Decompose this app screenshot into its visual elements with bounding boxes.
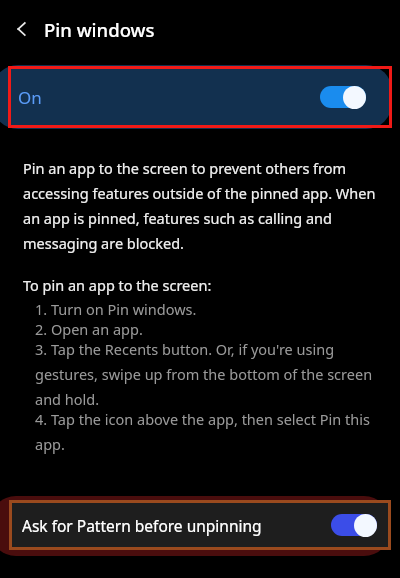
staticText: To pin an app to the screen: [23, 275, 212, 295]
staticText: On [18, 86, 42, 109]
staticText: Pin windows [44, 17, 155, 42]
staticText: 1. Turn on Pin windows. [35, 299, 197, 319]
button[interactable]: Toggle switch, on [320, 85, 366, 109]
staticText: Ask for Pattern before unpinning [22, 515, 262, 536]
staticText: 3. Tap the Recents button. Or, if you're… [35, 339, 377, 409]
staticText: 4. Tap the icon above the app, then sele… [35, 409, 377, 454]
staticText: Pin an app to the screen to prevent othe… [23, 158, 377, 253]
button[interactable]: On [0, 65, 392, 129]
button[interactable]: Toggle switch, on [331, 513, 377, 537]
button[interactable]: Ask for Pattern before unpinning [11, 503, 389, 547]
button[interactable]: Back [0, 7, 44, 51]
staticText: 2. Open an app. [35, 319, 143, 339]
